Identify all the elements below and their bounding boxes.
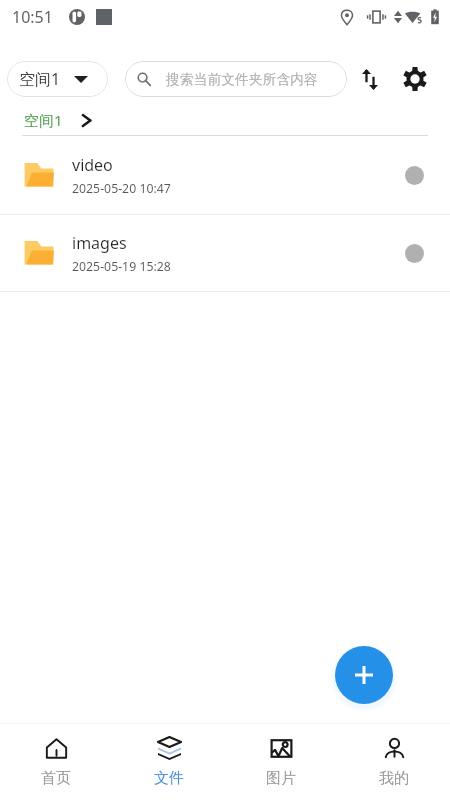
staticText: 10:51 [12,6,53,28]
staticText: 2025-05-19 15:28 [72,258,171,275]
button[interactable]: More options [396,235,432,271]
staticText: 空间1 [19,68,61,90]
button[interactable]: video [0,136,450,214]
staticText: 空间1 [24,110,63,130]
button[interactable]: 空间1 [7,61,108,97]
staticText: 图片 [266,769,296,788]
staticText: images [72,232,127,254]
button[interactable]: 图片 [225,731,337,794]
button[interactable]: Settings [397,61,433,97]
button[interactable]: images [0,215,450,291]
button[interactable]: 我的 [338,731,450,794]
staticText: 文件 [154,769,184,788]
button[interactable]: More options [396,157,432,193]
staticText: 首页 [41,769,71,788]
button[interactable]: 空间1 [24,110,91,130]
staticText: 搜索当前文件夹所含内容 [166,71,318,88]
button[interactable]: 文件 [113,731,225,794]
button[interactable]: Sort [352,61,388,97]
button[interactable]: 搜索当前文件夹所含内容 [125,61,347,97]
staticText: 2025-05-20 10:47 [72,180,171,197]
button[interactable]: Add [335,646,393,704]
button[interactable]: 首页 [0,731,112,794]
staticText: video [72,154,113,176]
staticText: 我的 [379,769,409,788]
